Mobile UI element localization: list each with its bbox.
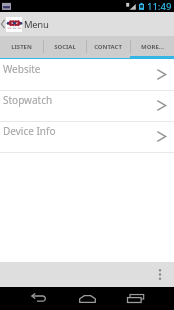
staticText: SOCIAL [54,43,76,51]
button[interactable]: SOCIAL [43,36,86,57]
staticText: LISTEN [11,43,32,51]
button[interactable]: MORE... [130,36,174,57]
staticText: Website [3,62,41,76]
button[interactable]: Recent apps [111,287,159,310]
button[interactable]: More options [146,262,174,287]
button[interactable]: CONTACT [86,36,130,57]
staticText: Stopwatch [3,93,53,107]
button[interactable]: LISTEN [0,36,43,57]
staticText: Device Info [3,124,56,138]
staticText: 11:49 [147,0,172,12]
button[interactable]: Home [63,287,111,310]
staticText: CONTACT [94,43,122,51]
button[interactable]: Website [0,60,174,90]
button[interactable]: Device Info [0,122,174,152]
staticText: MORE... [141,43,164,51]
staticText: Menu [24,18,49,31]
button[interactable]: Stopwatch [0,91,174,121]
button[interactable]: Navigate up [0,12,22,36]
button[interactable]: Back [15,287,63,310]
